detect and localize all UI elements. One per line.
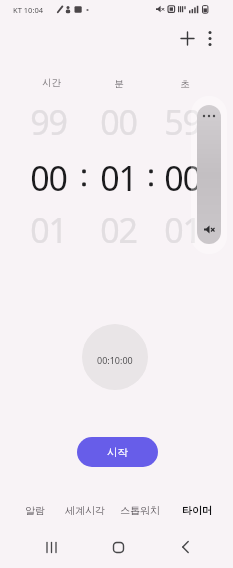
- button[interactable]: 시작: [77, 437, 158, 467]
- staticText: 스톱워치: [120, 504, 160, 517]
- staticText: 분: [114, 78, 124, 90]
- staticText: 02: [100, 207, 137, 243]
- staticText: 00: [164, 155, 201, 191]
- button[interactable]: [39, 535, 63, 559]
- button[interactable]: [176, 27, 198, 49]
- staticText: 59: [164, 99, 201, 135]
- staticText: KT 10:04: [13, 5, 43, 15]
- button[interactable]: [201, 27, 219, 49]
- staticText: 세계시각: [65, 504, 105, 517]
- button[interactable]: [173, 535, 197, 559]
- staticText: 00: [100, 99, 137, 135]
- staticText: 시작: [107, 446, 128, 459]
- staticText: 알람: [25, 504, 45, 517]
- button[interactable]: 세계시각: [59, 501, 111, 519]
- staticText: 00:10:00: [97, 354, 133, 366]
- staticText: 01: [100, 155, 137, 191]
- button[interactable]: 알람: [13, 501, 57, 519]
- staticText: 시간: [42, 77, 61, 89]
- button[interactable]: 00:10:00: [82, 324, 148, 390]
- staticText: 초: [180, 78, 190, 90]
- button[interactable]: [106, 535, 130, 559]
- staticText: 00: [30, 155, 67, 191]
- button[interactable]: [197, 105, 221, 244]
- button[interactable]: 스톱워치: [114, 501, 166, 519]
- staticText: 01: [30, 207, 67, 243]
- button[interactable]: 타이머: [174, 501, 220, 519]
- staticText: 99: [30, 99, 67, 135]
- staticText: 01: [164, 207, 201, 243]
- staticText: 타이머: [182, 504, 212, 517]
